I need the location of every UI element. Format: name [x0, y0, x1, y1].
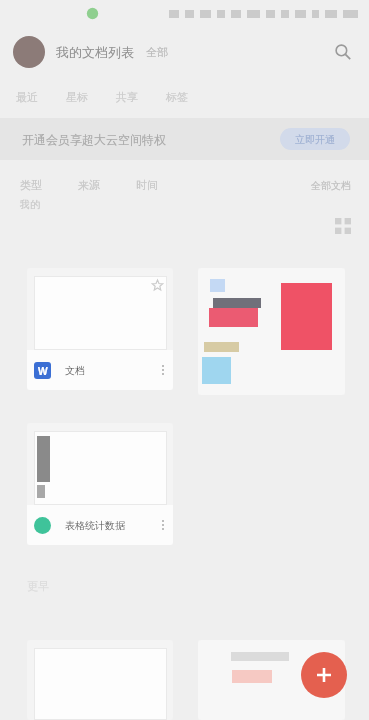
staticText: 我的文档列表: [56, 44, 134, 60]
staticText: 来源: [78, 178, 100, 192]
staticText: 表格统计数据: [65, 519, 125, 532]
button[interactable]: Search: [331, 40, 355, 64]
staticText: 星标: [66, 90, 88, 104]
button[interactable]: 共享: [116, 90, 166, 104]
button[interactable]: Screenshot: [198, 268, 345, 395]
staticText: 立即开通: [295, 133, 335, 146]
button[interactable]: 标签: [166, 90, 216, 104]
staticText: 文档: [65, 364, 85, 377]
button[interactable]: 全部文档: [311, 179, 351, 192]
button[interactable]: W: [27, 268, 173, 390]
button[interactable]: Account: [13, 36, 45, 68]
button[interactable]: 我的: [20, 198, 40, 211]
staticText: 标签: [166, 90, 188, 104]
button[interactable]: Screenshot: [198, 640, 345, 720]
staticText: 类型: [20, 178, 42, 192]
button[interactable]: 类型: [20, 178, 78, 192]
button[interactable]: 时间: [136, 178, 194, 192]
staticText: 共享: [116, 90, 138, 104]
staticText: W: [38, 364, 48, 378]
button[interactable]: 来源: [78, 178, 136, 192]
staticText: 全部文档: [311, 179, 351, 192]
button[interactable]: 开通会员享超大云空间特权: [22, 132, 166, 147]
staticText: 全部: [146, 45, 168, 59]
staticText: 最近: [16, 90, 38, 104]
button[interactable]: New document: [301, 652, 347, 698]
button[interactable]: W: [27, 640, 173, 720]
button[interactable]: 最近: [16, 90, 66, 104]
button[interactable]: 星标: [66, 90, 116, 104]
button[interactable]: 更早: [27, 579, 49, 593]
button[interactable]: 立即开通: [280, 128, 350, 150]
button[interactable]: 表格统计数据: [27, 423, 173, 545]
staticText: 时间: [136, 178, 158, 192]
button[interactable]: View mode: [335, 218, 351, 234]
